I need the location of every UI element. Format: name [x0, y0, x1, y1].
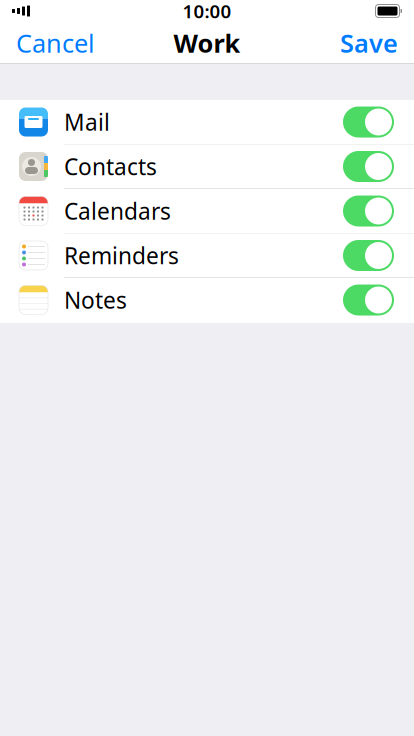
staticText: Work — [173, 26, 240, 60]
button[interactable]: Contacts — [0, 144, 414, 189]
staticText: Reminders — [64, 240, 179, 270]
staticText: Mail — [64, 107, 110, 137]
button[interactable]: Mail — [0, 100, 414, 144]
staticText: 10:00 — [182, 0, 231, 23]
button[interactable]: Reminders — [0, 233, 414, 278]
staticText: Notes — [64, 285, 127, 315]
staticText: Save — [340, 26, 398, 60]
button[interactable]: Calendars — [0, 189, 414, 233]
staticText: Contacts — [64, 151, 157, 181]
button[interactable]: Notes — [0, 278, 414, 322]
staticText: Calendars — [64, 196, 171, 226]
staticText: Cancel — [16, 26, 95, 60]
button[interactable]: Cancel — [0, 22, 111, 64]
button[interactable]: Save — [324, 22, 414, 64]
